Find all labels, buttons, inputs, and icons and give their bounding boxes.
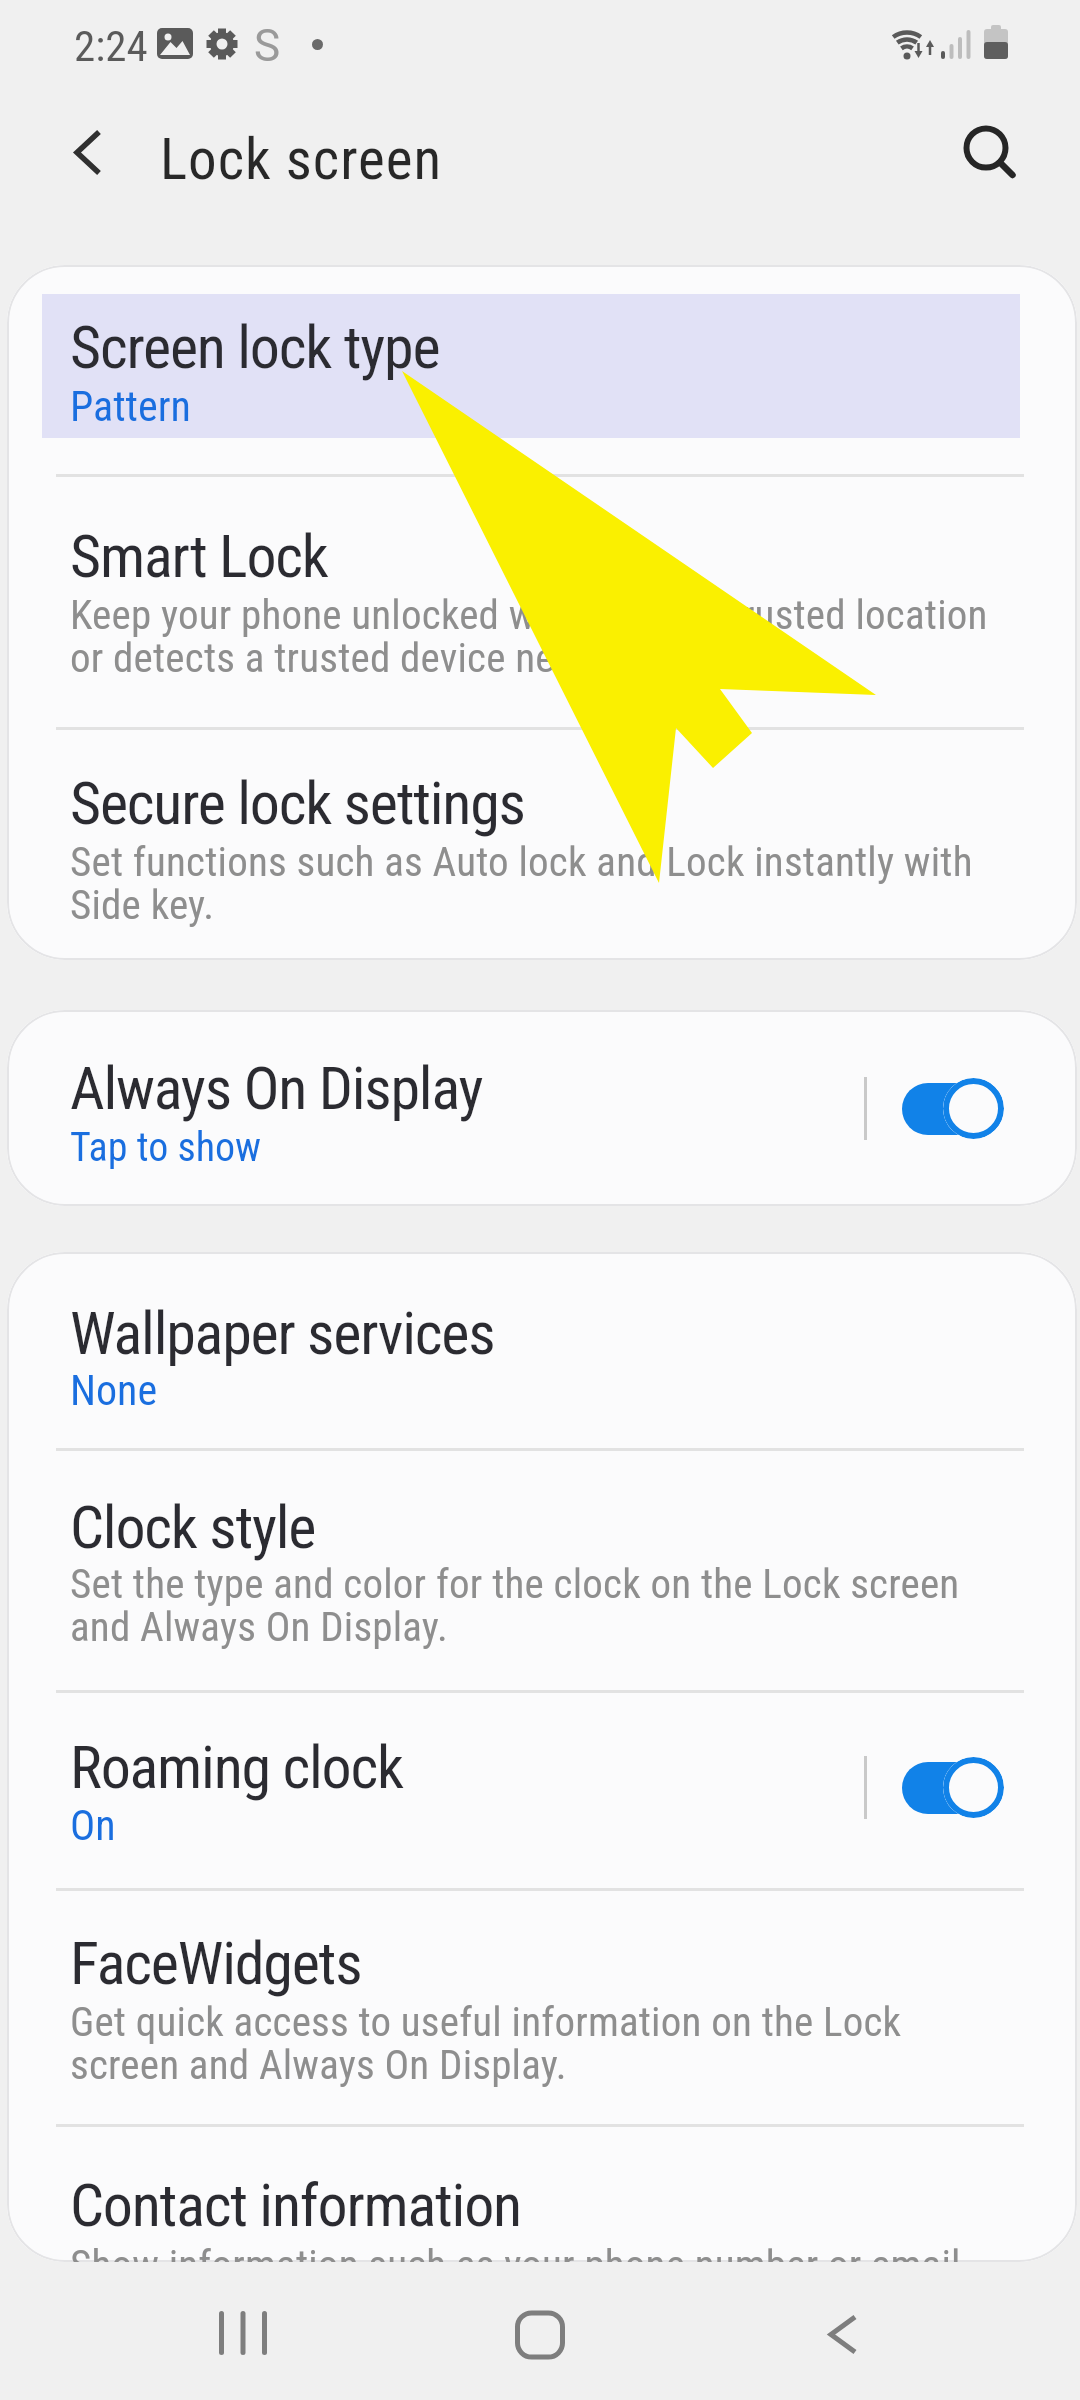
staticText: Set the type and color for the clock on … bbox=[70, 1560, 960, 1608]
button[interactable] bbox=[8, 1693, 1072, 1888]
staticText: screen and Always On Display. bbox=[70, 2041, 567, 2089]
staticText: Screen lock type bbox=[70, 312, 440, 382]
staticText: or detects a trusted device nearby. bbox=[70, 634, 634, 682]
staticText: Contact information bbox=[70, 2170, 521, 2240]
staticText: Smart Lock bbox=[70, 521, 328, 591]
button[interactable] bbox=[8, 1891, 1072, 2124]
staticText: Get quick access to useful information o… bbox=[70, 1998, 902, 2046]
button[interactable] bbox=[8, 1252, 1072, 1448]
button[interactable]: Contact information bbox=[8, 2127, 1072, 2262]
button[interactable] bbox=[8, 477, 1072, 727]
button[interactable] bbox=[7, 1010, 1077, 1206]
button[interactable] bbox=[948, 112, 1028, 190]
staticText: FaceWidgets bbox=[70, 1928, 362, 1998]
staticText: S bbox=[254, 20, 281, 72]
staticText: Secure lock settings bbox=[70, 768, 525, 838]
staticText: On bbox=[70, 1801, 116, 1850]
staticText: Roaming clock bbox=[70, 1732, 403, 1802]
staticText: 2:24 bbox=[74, 21, 148, 71]
staticText: Show information such as your phone numb… bbox=[70, 2241, 961, 2262]
button[interactable] bbox=[8, 730, 1072, 960]
staticText: and Always On Display. bbox=[70, 1603, 449, 1651]
button[interactable] bbox=[460, 2281, 620, 2391]
staticText: Side key. bbox=[70, 881, 215, 929]
button[interactable] bbox=[902, 1078, 1004, 1139]
button[interactable] bbox=[150, 2281, 334, 2391]
staticText: Tap to show bbox=[70, 1124, 262, 1171]
staticText: Lock screen bbox=[160, 126, 443, 193]
button[interactable] bbox=[42, 294, 1020, 438]
button[interactable] bbox=[902, 1757, 1004, 1818]
button[interactable] bbox=[58, 112, 132, 190]
button[interactable] bbox=[8, 1451, 1072, 1690]
staticText: Pattern bbox=[70, 382, 191, 431]
staticText: Wallpaper services bbox=[70, 1298, 495, 1368]
staticText: Set functions such as Auto lock and Lock… bbox=[70, 838, 973, 886]
staticText: Always On Display bbox=[70, 1053, 483, 1123]
staticText: Keep your phone unlocked when it's in a … bbox=[70, 591, 988, 639]
button[interactable] bbox=[760, 2281, 944, 2391]
staticText: None bbox=[70, 1366, 158, 1415]
staticText: Clock style bbox=[70, 1492, 316, 1562]
